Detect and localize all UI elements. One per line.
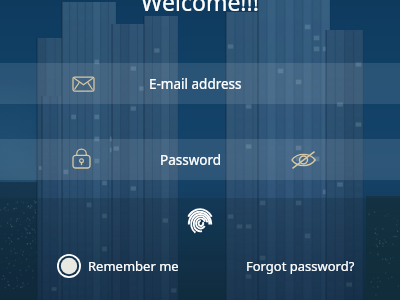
button[interactable]: E-mail address — [0, 63, 400, 104]
staticText: Forgot password? — [246, 257, 355, 275]
button[interactable]: Remember me — [57, 254, 179, 278]
staticText: E-mail address — [149, 75, 242, 93]
button[interactable]: Password — [0, 139, 400, 180]
staticText: Password — [160, 151, 222, 169]
staticText: Welcome!!! — [0, 0, 400, 17]
button[interactable]: Fingerprint login — [182, 204, 218, 240]
button[interactable]: Forgot password? — [246, 257, 355, 275]
button[interactable]: Show password — [283, 139, 323, 180]
staticText: Remember me — [88, 257, 179, 275]
